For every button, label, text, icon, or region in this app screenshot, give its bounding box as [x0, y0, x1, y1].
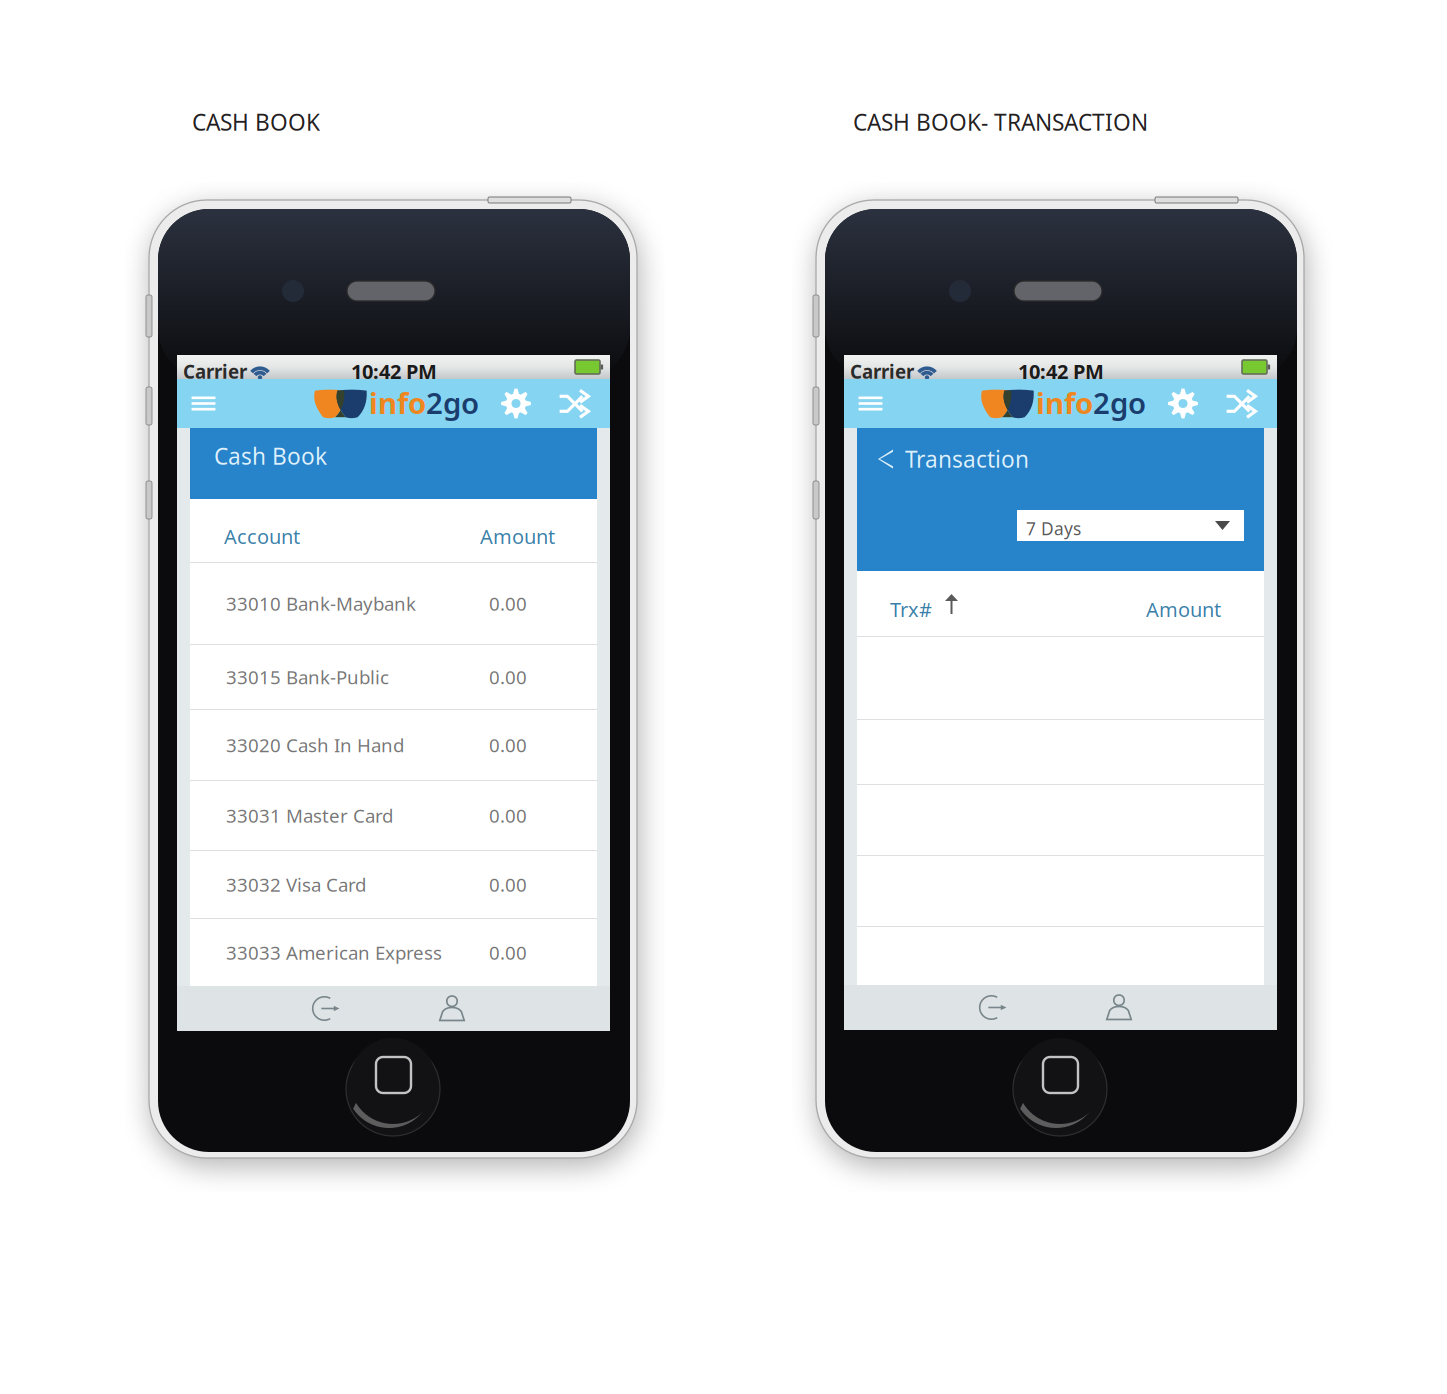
button[interactable]: Profile — [402, 986, 502, 1031]
button[interactable]: Shuffle — [550, 379, 598, 428]
staticText: 0.00 — [489, 733, 527, 757]
staticText: 33020 Cash In Hand — [226, 733, 404, 757]
staticText: 0.00 — [489, 665, 527, 689]
staticText: Account — [224, 523, 300, 550]
staticText: info — [1036, 383, 1093, 422]
staticText: 0.00 — [489, 803, 527, 828]
staticText: Amount — [1146, 596, 1221, 623]
button[interactable]: 33032 Visa Card — [190, 851, 597, 918]
staticText: Transaction — [905, 444, 1029, 474]
button[interactable]: 33015 Bank-Public — [190, 645, 597, 709]
button[interactable]: 33033 American Express — [190, 919, 597, 986]
button[interactable]: 7 Days — [1017, 510, 1244, 541]
button[interactable]: Settings — [1159, 379, 1207, 428]
staticText: 33010 Bank-Maybank — [226, 591, 416, 616]
staticText: Carrier — [850, 359, 914, 384]
staticText: CASH BOOK — [192, 107, 320, 137]
button[interactable]: Log out — [277, 986, 377, 1031]
staticText: info — [369, 383, 426, 422]
staticText: CASH BOOK- TRANSACTION — [853, 107, 1148, 137]
button[interactable]: 33031 Master Card — [190, 781, 597, 850]
staticText: Cash Book — [214, 441, 327, 471]
staticText: 7 Days — [1026, 517, 1081, 540]
staticText: 33032 Visa Card — [226, 872, 366, 897]
staticText: Amount — [480, 523, 555, 550]
staticText: 0.00 — [489, 940, 527, 965]
staticText: 0.00 — [489, 591, 527, 616]
staticText: 0.00 — [489, 872, 527, 897]
button[interactable]: 33010 Bank-Maybank — [190, 563, 597, 644]
staticText: Carrier — [183, 359, 247, 384]
staticText: 33033 American Express — [226, 940, 442, 965]
button[interactable]: Transaction — [870, 437, 1037, 481]
staticText: 33015 Bank-Public — [226, 665, 389, 689]
staticText: 2go — [1093, 383, 1146, 422]
button[interactable]: Log out — [944, 985, 1044, 1030]
staticText: 2go — [426, 383, 479, 422]
staticText: 10:42 PM — [1018, 358, 1104, 385]
staticText: 33031 Master Card — [226, 803, 393, 828]
button[interactable]: Settings — [492, 379, 540, 428]
button[interactable]: Menu — [844, 379, 897, 428]
button[interactable]: Shuffle — [1217, 379, 1265, 428]
staticText: Trx# — [890, 596, 932, 623]
button[interactable]: Profile — [1069, 985, 1169, 1030]
staticText: 10:42 PM — [351, 358, 437, 385]
button[interactable]: 33020 Cash In Hand — [190, 710, 597, 780]
button[interactable]: Menu — [177, 379, 230, 428]
